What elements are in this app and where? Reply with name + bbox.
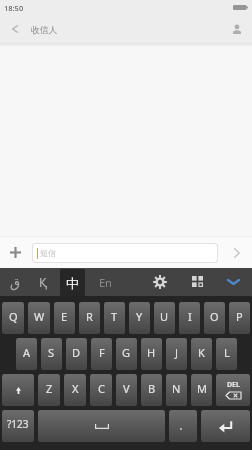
button[interactable]: Settings xyxy=(143,268,177,296)
button[interactable]: Send xyxy=(226,242,248,264)
button[interactable]: Z xyxy=(38,374,60,406)
button[interactable]: Enter xyxy=(201,410,250,442)
staticText: P xyxy=(236,309,243,324)
staticText: ?123 xyxy=(7,417,29,431)
button[interactable]: F xyxy=(91,338,112,370)
button[interactable]: T xyxy=(104,302,125,334)
button[interactable]: H xyxy=(141,338,162,370)
button[interactable]: Add attachment xyxy=(4,241,27,264)
staticText: 18:50 xyxy=(4,3,24,13)
staticText: 。 xyxy=(179,420,188,431)
button[interactable]: Space xyxy=(38,410,165,442)
button[interactable]: X xyxy=(64,374,86,406)
staticText: M xyxy=(197,381,207,396)
staticText: L xyxy=(224,345,230,360)
staticText: 收信人 xyxy=(31,25,58,36)
button[interactable]: E xyxy=(54,302,75,334)
staticText: V xyxy=(123,381,130,396)
staticText: ق xyxy=(10,275,21,290)
staticText: W xyxy=(34,309,45,324)
staticText: G xyxy=(122,345,131,360)
button[interactable]: G xyxy=(116,338,137,370)
button[interactable]: I xyxy=(179,302,200,334)
button[interactable]: Contacts xyxy=(222,15,252,43)
button[interactable]: ?123 xyxy=(2,410,34,442)
button[interactable]: En xyxy=(90,268,120,296)
staticText: E xyxy=(61,309,68,324)
staticText: Қ xyxy=(39,274,48,290)
button[interactable]: P xyxy=(229,302,250,334)
staticText: Z xyxy=(46,381,53,396)
staticText: Y xyxy=(136,309,143,324)
staticText: 短信 xyxy=(40,248,56,258)
button[interactable]: S xyxy=(41,338,62,370)
staticText: D xyxy=(72,345,81,360)
button[interactable]: 中 xyxy=(58,268,86,296)
button[interactable]: Q xyxy=(2,302,24,334)
button[interactable]: J xyxy=(166,338,187,370)
button[interactable]: More apps xyxy=(180,268,214,296)
button[interactable]: K xyxy=(191,338,212,370)
staticText: I xyxy=(188,309,192,324)
button[interactable]: W xyxy=(28,302,50,334)
button[interactable]: ق xyxy=(1,268,29,296)
staticText: T xyxy=(111,309,118,324)
button[interactable]: Қ xyxy=(29,268,57,296)
button[interactable]: B xyxy=(141,374,162,406)
button[interactable]: A xyxy=(16,338,37,370)
button[interactable]: 。 xyxy=(169,410,197,442)
staticText: H xyxy=(147,345,156,360)
button[interactable]: Y xyxy=(129,302,150,334)
staticText: N xyxy=(172,381,181,396)
staticText: X xyxy=(72,381,79,396)
staticText: A xyxy=(23,345,31,360)
button[interactable]: L xyxy=(216,338,237,370)
button[interactable]: R xyxy=(79,302,100,334)
staticText: 中 xyxy=(66,275,79,291)
button[interactable]: C xyxy=(90,374,112,406)
staticText: En xyxy=(99,275,112,290)
button[interactable]: N xyxy=(166,374,187,406)
button[interactable]: Back xyxy=(0,15,30,43)
staticText: O xyxy=(210,309,219,324)
staticText: J xyxy=(175,345,179,360)
button[interactable]: 短信 xyxy=(33,244,217,262)
staticText: K xyxy=(198,345,205,360)
staticText: U xyxy=(160,309,169,324)
button[interactable]: Shift xyxy=(2,374,34,406)
button[interactable]: O xyxy=(204,302,225,334)
button[interactable]: M xyxy=(191,374,212,406)
button[interactable]: Hide keyboard xyxy=(216,268,250,296)
button[interactable]: Delete xyxy=(216,374,250,406)
staticText: R xyxy=(86,309,93,324)
button[interactable]: D xyxy=(66,338,87,370)
staticText: C xyxy=(98,381,105,396)
staticText: Q xyxy=(9,309,18,324)
button[interactable]: U xyxy=(154,302,175,334)
button[interactable]: V xyxy=(116,374,137,406)
staticText: B xyxy=(148,381,156,396)
staticText: S xyxy=(48,345,55,360)
staticText: DEL xyxy=(227,380,240,390)
staticText: F xyxy=(99,345,105,360)
